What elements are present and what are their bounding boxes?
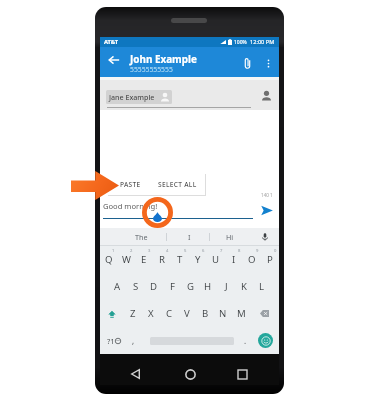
button[interactable]: X	[142, 300, 160, 327]
staticText: 2	[130, 248, 133, 254]
button[interactable]: W	[117, 246, 135, 273]
staticText: X	[148, 307, 154, 320]
staticText: Z	[130, 307, 136, 320]
button[interactable]: SELECT ALL	[152, 174, 202, 195]
staticText: 6	[202, 248, 205, 254]
button[interactable]: J	[217, 273, 235, 300]
button[interactable]: O	[243, 246, 261, 273]
staticText: John Example	[130, 52, 197, 65]
staticText: H	[204, 280, 212, 293]
button[interactable]: B	[196, 300, 214, 327]
button[interactable]: M	[232, 300, 250, 327]
button[interactable]: I	[174, 228, 204, 245]
staticText: 3	[148, 248, 151, 254]
button[interactable]: Back	[104, 50, 124, 70]
staticText: B	[202, 307, 209, 320]
staticText: E	[141, 253, 147, 266]
button[interactable]: PASTE	[113, 174, 148, 195]
staticText: M	[237, 307, 246, 320]
staticText: J	[225, 280, 228, 293]
staticText: C	[166, 307, 173, 320]
button[interactable]: I	[225, 246, 243, 273]
staticText: I	[188, 232, 191, 242]
button[interactable]: D	[145, 273, 163, 300]
staticText: 9	[256, 248, 259, 254]
staticText: 8	[238, 248, 241, 254]
staticText: 5	[184, 248, 187, 254]
button[interactable]: E	[135, 246, 153, 273]
staticText: AT&T	[104, 38, 119, 46]
staticText: 12:00 PM	[250, 38, 275, 46]
button[interactable]: Jane Example	[106, 90, 172, 104]
staticText: T	[177, 253, 183, 266]
button[interactable]: Back	[125, 364, 145, 384]
button[interactable]: .	[236, 327, 254, 354]
staticText: Good morning!	[103, 201, 158, 211]
staticText: 4	[166, 248, 169, 254]
button[interactable]: Backspace	[250, 300, 279, 327]
staticText: The	[135, 232, 148, 242]
button[interactable]: P	[261, 246, 279, 273]
staticText: W	[122, 253, 131, 266]
staticText: A	[114, 280, 121, 293]
staticText: 100%	[234, 39, 247, 46]
staticText: Q	[105, 253, 113, 266]
staticText: PASTE	[120, 180, 141, 189]
staticText: Y	[195, 253, 201, 266]
staticText: Hi	[226, 232, 234, 242]
button[interactable]: Z	[124, 300, 142, 327]
staticText: 7	[220, 248, 223, 254]
staticText: G	[187, 280, 194, 293]
staticText: SELECT ALL	[158, 180, 197, 189]
staticText: 0	[274, 248, 277, 254]
staticText: 55555555555	[130, 65, 173, 74]
button[interactable]: The	[121, 228, 161, 245]
button[interactable]: Emoji	[254, 327, 276, 354]
button[interactable]: V	[178, 300, 196, 327]
staticText: O	[248, 253, 256, 266]
staticText: F	[170, 280, 175, 293]
button[interactable]: A	[108, 273, 127, 300]
button[interactable]: G	[181, 273, 199, 300]
staticText: 1	[112, 248, 115, 254]
button[interactable]: Pick contact	[260, 89, 272, 101]
button[interactable]: C	[160, 300, 178, 327]
button[interactable]: Symbols and emoji	[99, 327, 129, 354]
button[interactable]: U	[207, 246, 225, 273]
button[interactable]: Send message	[261, 205, 273, 216]
staticText: N	[219, 307, 227, 320]
button[interactable]: Shift	[100, 300, 124, 327]
button[interactable]: F	[163, 273, 181, 300]
staticText: K	[241, 280, 247, 293]
button[interactable]: Y	[189, 246, 207, 273]
button[interactable]: N	[214, 300, 232, 327]
staticText: .	[244, 335, 247, 346]
staticText: I	[232, 253, 236, 266]
button[interactable]: S	[127, 273, 145, 300]
button[interactable]: Space	[144, 327, 240, 354]
staticText: Jane Example	[109, 92, 155, 102]
button[interactable]: ,	[124, 327, 142, 354]
staticText: S	[133, 280, 139, 293]
button[interactable]: More options	[258, 53, 278, 73]
staticText: P	[267, 253, 273, 266]
staticText: ?1	[107, 336, 115, 346]
button[interactable]: H	[199, 273, 217, 300]
staticText: V	[184, 307, 190, 320]
button[interactable]: Voice input	[255, 228, 275, 245]
button[interactable]: R	[153, 246, 171, 273]
button[interactable]: L	[253, 273, 271, 300]
button[interactable]: Hi	[215, 228, 245, 245]
staticText: U	[212, 253, 220, 266]
button[interactable]: T	[171, 246, 189, 273]
staticText: D	[150, 280, 158, 293]
button[interactable]: Recent apps	[232, 364, 252, 384]
button[interactable]: Home	[180, 364, 200, 384]
staticText: 140 1	[261, 192, 273, 198]
staticText: R	[159, 253, 165, 266]
staticText: L	[259, 280, 265, 293]
button[interactable]: K	[235, 273, 253, 300]
button[interactable]: Q	[100, 246, 117, 273]
staticText: ,	[132, 335, 135, 346]
button[interactable]: Attach file	[237, 53, 257, 73]
